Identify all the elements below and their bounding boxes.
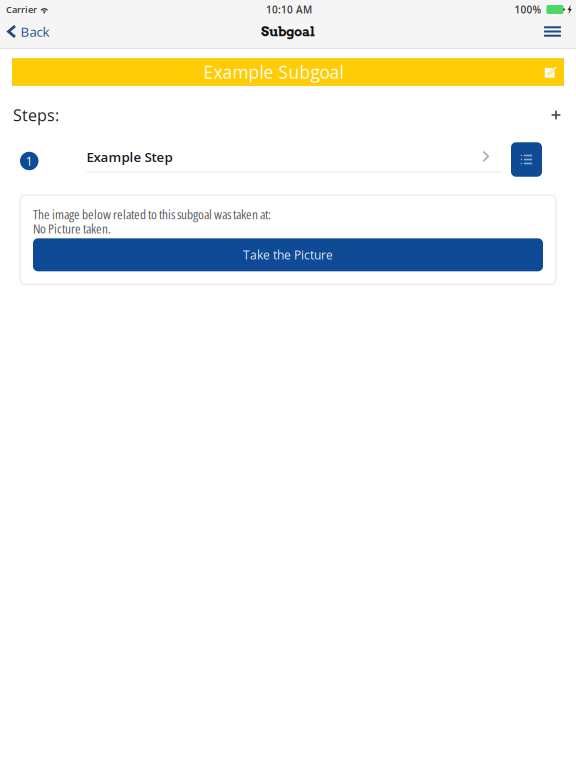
staticText: Back	[20, 22, 49, 41]
staticText: 1	[26, 153, 33, 169]
staticText: 10:10 AM	[266, 3, 312, 16]
staticText: Carrier	[6, 3, 37, 16]
staticText: Example Subgoal	[203, 60, 343, 84]
button[interactable]: Menu	[537, 19, 568, 44]
staticText: The image below related to this subgoal …	[33, 205, 271, 237]
button[interactable]: Add step	[544, 103, 568, 127]
staticText: Steps:	[13, 104, 59, 126]
button[interactable]: Step options	[511, 142, 542, 177]
staticText: 100%	[514, 3, 541, 16]
button[interactable]: Example Step	[38, 142, 502, 177]
staticText: Subgoal	[261, 23, 315, 39]
button[interactable]: Back	[0, 19, 57, 44]
staticText: Example Step	[86, 148, 172, 166]
staticText: Take the Picture	[243, 247, 333, 263]
button[interactable]: Example Subgoal	[12, 58, 564, 86]
button[interactable]: Take the Picture	[33, 238, 543, 271]
